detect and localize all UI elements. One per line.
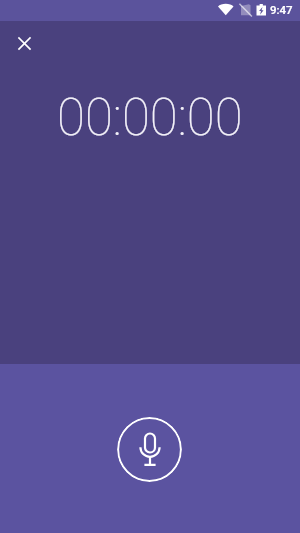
button[interactable]: Close xyxy=(12,31,37,56)
button[interactable]: Record xyxy=(117,417,182,482)
staticText: 00:00:00 xyxy=(57,88,243,148)
staticText: 9:47 xyxy=(270,3,293,16)
